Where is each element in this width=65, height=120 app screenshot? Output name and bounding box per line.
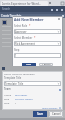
button[interactable]: Rick Agreement [14, 41, 61, 46]
button[interactable]: Approver [14, 29, 61, 34]
staticText: * [29, 24, 31, 28]
staticText: * [34, 36, 36, 40]
staticText: Select Role [14, 24, 28, 28]
button[interactable]: Close dialog [57, 17, 61, 21]
button[interactable]: Toolbar action [55, 8, 58, 11]
button[interactable]: Cancel [39, 63, 53, 66]
staticText: Approver [15, 30, 57, 34]
staticText: Search [2, 7, 11, 11]
staticText: Create Template [1, 14, 22, 18]
staticText: Cancel [52, 112, 61, 116]
staticText: 1 [15, 101, 17, 104]
staticText: 1 [15, 54, 60, 58]
staticText: Save [37, 112, 43, 116]
button[interactable]: 1 [14, 53, 61, 58]
staticText: Primary Owner [15, 97, 33, 100]
staticText: Cancel [42, 63, 51, 66]
button[interactable]: More Options [4, 106, 61, 109]
staticText: Icertis Experience for Word... [2, 2, 47, 6]
staticText: Rick Editor [15, 93, 28, 96]
button[interactable]: Menu [60, 1, 65, 6]
staticText: Template Title [4, 76, 22, 80]
button[interactable]: Template_Title [4, 81, 61, 86]
staticText: Template_Title [5, 82, 57, 86]
button[interactable]: Save [33, 111, 47, 117]
button[interactable]: Add team member [58, 88, 61, 91]
staticText: Step [4, 101, 15, 104]
button[interactable]: Add [22, 63, 36, 66]
staticText: Name [4, 93, 15, 96]
button[interactable]: Toolbar action [60, 8, 63, 11]
staticText: More Options [42, 106, 58, 109]
button[interactable]: Cancel [49, 111, 63, 117]
staticText: Icertis Glossary Templates [4, 72, 35, 75]
staticText: Add New Member [14, 17, 44, 21]
button[interactable]: Toolbar action [50, 8, 53, 11]
button[interactable]: Close tab [48, 1, 52, 5]
staticText: Add [26, 63, 32, 66]
staticText: Select Member [14, 36, 33, 40]
button[interactable]: Icertis Experience for Word... [1, 1, 48, 6]
staticText: Rick Agreement [15, 42, 57, 46]
staticText: Team [4, 87, 11, 91]
staticText: Role [4, 97, 15, 100]
staticText: Step [14, 48, 20, 52]
